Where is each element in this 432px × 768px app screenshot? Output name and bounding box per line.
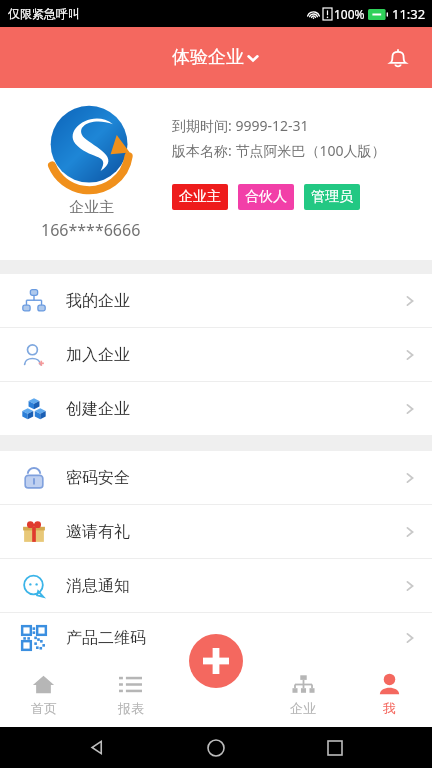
button[interactable]: 体验企业 — [166, 40, 266, 75]
button[interactable]: 消息通知 — [0, 559, 432, 612]
button[interactable]: Home — [194, 727, 238, 768]
button[interactable]: 管理员 — [304, 184, 360, 210]
staticText: 仅限紧急呼叫 — [8, 6, 80, 21]
staticText: 首页 — [31, 700, 57, 716]
staticText: 合伙人 — [245, 188, 287, 206]
button[interactable]: 企业 — [260, 662, 346, 727]
staticText: 密码安全 — [66, 468, 130, 488]
staticText: 邀请有礼 — [66, 522, 130, 542]
button[interactable]: Back — [75, 727, 119, 768]
staticText: 我 — [383, 700, 396, 716]
staticText: 版本名称: 节点阿米巴（100人版） — [172, 141, 386, 160]
button[interactable]: 邀请有礼 — [0, 505, 432, 558]
button[interactable]: 企业主 — [172, 184, 228, 210]
button[interactable]: 加入企业 — [0, 328, 432, 381]
button[interactable]: 创建企业 — [0, 382, 432, 435]
staticText: 体验企业 — [172, 46, 244, 69]
staticText: 创建企业 — [66, 399, 130, 419]
staticText: 产品二维码 — [66, 628, 146, 648]
staticText: 报表 — [118, 700, 144, 716]
staticText: 到期时间: 9999-12-31 — [172, 116, 309, 135]
staticText: 我的企业 — [66, 291, 130, 311]
button[interactable]: 首页 — [0, 662, 87, 727]
button[interactable]: 我的企业 — [0, 274, 432, 327]
staticText: 企业主 — [69, 198, 114, 217]
staticText: 加入企业 — [66, 345, 130, 365]
button[interactable]: Add — [189, 634, 243, 688]
button[interactable]: 产品二维码 — [0, 613, 432, 662]
button[interactable]: 我 — [346, 662, 432, 727]
button[interactable]: 合伙人 — [238, 184, 294, 210]
staticText: 166****6666 — [41, 219, 141, 241]
button[interactable]: Notifications — [378, 38, 418, 78]
staticText: 企业 — [290, 700, 316, 716]
staticText: 100% — [334, 6, 365, 22]
staticText: 11:32 — [392, 5, 426, 23]
staticText: 管理员 — [311, 188, 353, 206]
button[interactable]: 密码安全 — [0, 451, 432, 504]
staticText: 消息通知 — [66, 576, 130, 596]
staticText: 企业主 — [179, 188, 221, 206]
button[interactable]: 报表 — [87, 662, 174, 727]
button[interactable]: Recents — [313, 727, 357, 768]
